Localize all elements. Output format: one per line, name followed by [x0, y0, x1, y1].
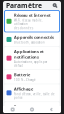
staticText: Sons: [14, 104, 23, 109]
button[interactable]: Appareils connectés: [4, 33, 59, 46]
button[interactable]: Sons: [4, 102, 59, 114]
staticText: 100 % – Chargé: [14, 78, 36, 82]
button[interactable]: Réseau et Internet: [4, 10, 59, 32]
button[interactable]: Rechercher: [52, 2, 58, 8]
staticText: Bluetooth, association: [14, 41, 45, 44]
staticText: Batterie: [14, 72, 30, 77]
button[interactable]: Accueil: [22, 108, 42, 111]
staticText: des données: [14, 26, 33, 30]
staticText: Volume, vibreur, Ne pas déranger: [14, 110, 48, 114]
button[interactable]: Retour: [42, 108, 61, 111]
button[interactable]: Applications et notifications: [4, 47, 59, 69]
staticText: Applications et notifications: [14, 49, 44, 59]
button[interactable]: Aperçu: [3, 108, 22, 111]
staticText: Fond d'écran, veille, taille de police: [14, 92, 55, 99]
button[interactable]: Affichage: [4, 84, 59, 101]
staticText: Paramètre: [6, 1, 42, 10]
staticText: Wi-Fi, réseau mobile, utilisation: [14, 19, 43, 26]
staticText: Autorisations, applis par défaut: [14, 60, 47, 67]
staticText: Affichage: [14, 86, 33, 92]
staticText: Appareils connectés: [14, 35, 54, 40]
button[interactable]: Batterie: [4, 70, 59, 84]
staticText: Réseau et Internet: [14, 12, 51, 18]
